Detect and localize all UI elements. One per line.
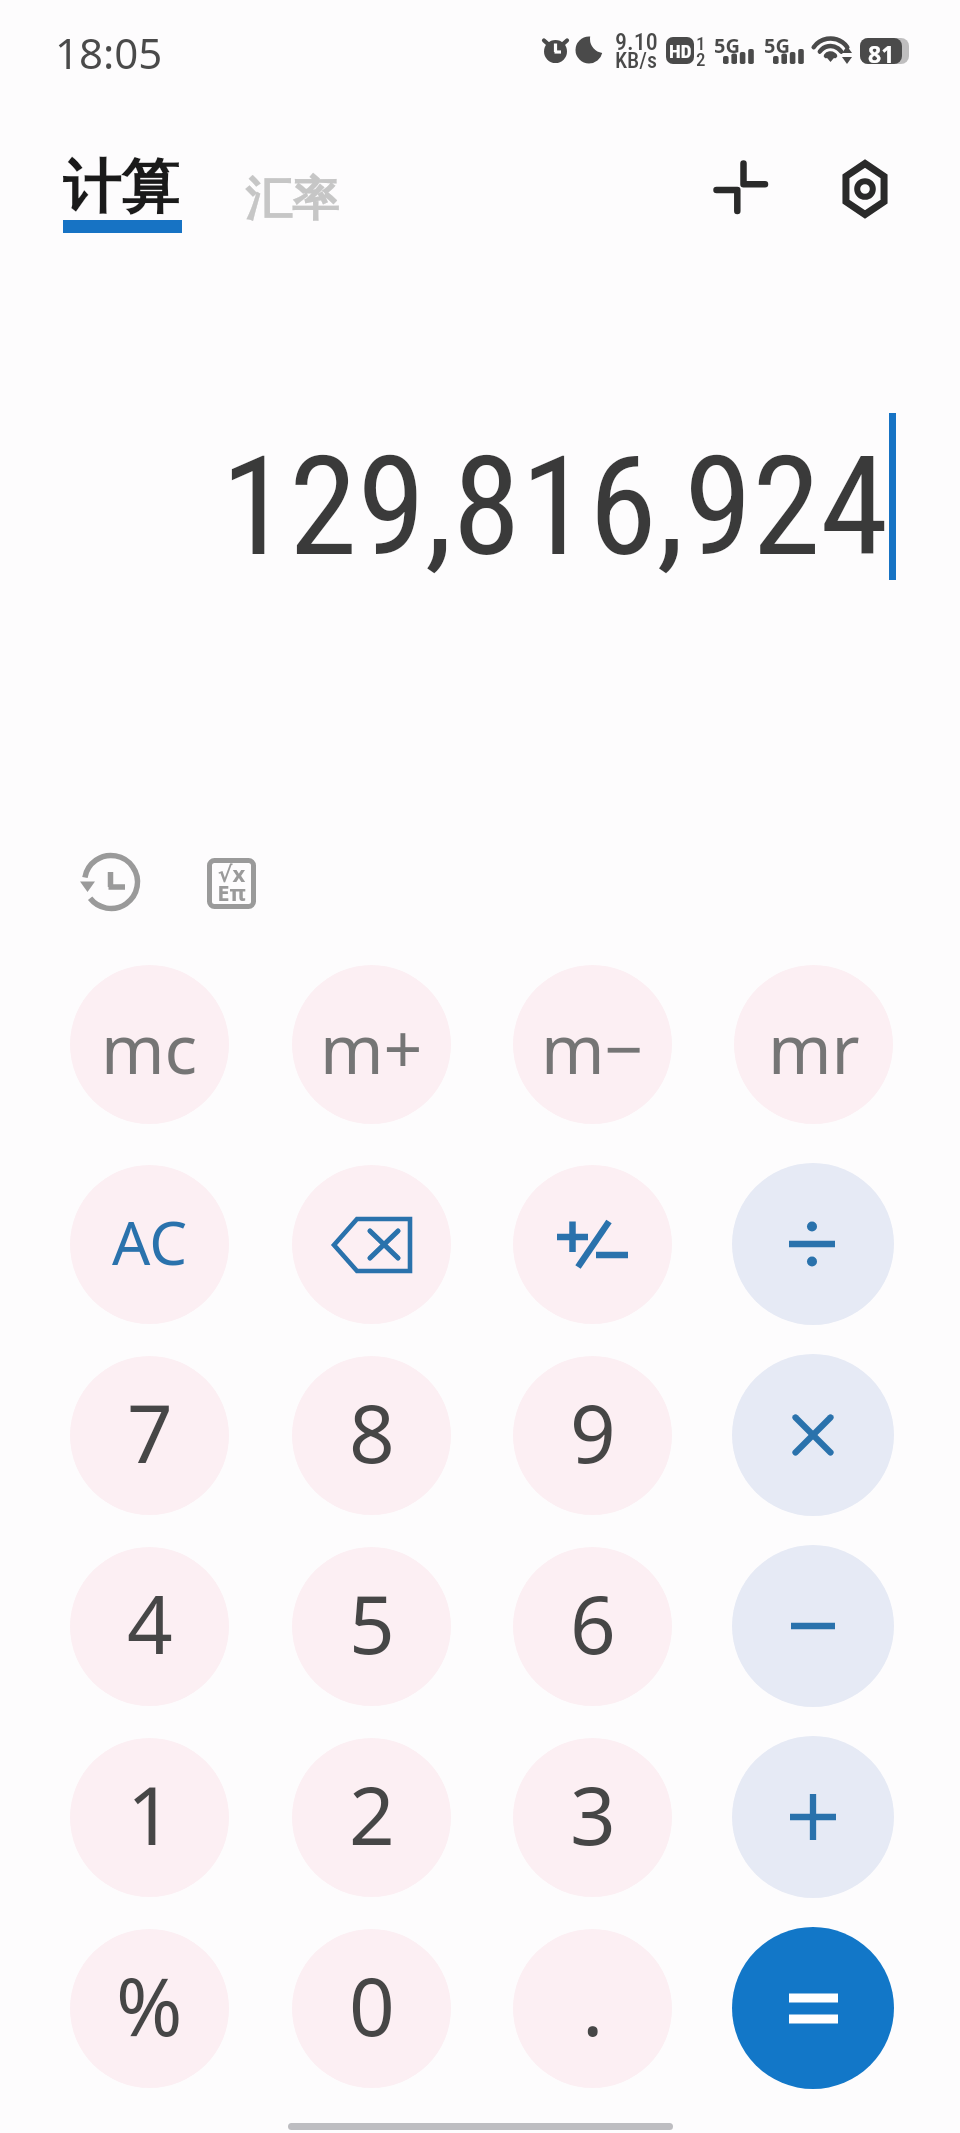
staticText: mc <box>101 1001 198 1094</box>
button[interactable]: 8 <box>292 1356 451 1515</box>
staticText: % <box>116 1950 183 2059</box>
button[interactable]: 汇率 <box>245 170 339 229</box>
staticText: 129,816,924 <box>221 426 889 588</box>
button[interactable]: 5 <box>292 1547 451 1706</box>
button[interactable]: Minus <box>732 1545 894 1707</box>
button[interactable]: Settings <box>810 134 920 244</box>
button[interactable]: Plus <box>732 1736 894 1898</box>
staticText: 5G <box>714 32 740 59</box>
button[interactable]: 0 <box>292 1929 451 2088</box>
staticText: . <box>582 1950 604 2059</box>
staticText: 2 <box>349 1759 395 1868</box>
button[interactable]: m+ <box>292 965 451 1124</box>
button[interactable]: History <box>63 834 159 930</box>
staticText: 0 <box>349 1950 395 2059</box>
staticText: 9.10 <box>615 28 658 56</box>
button[interactable]: Scientific mode <box>183 834 279 930</box>
button[interactable]: Equals <box>732 1927 894 2089</box>
button[interactable]: mc <box>70 965 229 1124</box>
button[interactable]: Unit converter <box>686 133 796 243</box>
button[interactable]: 4 <box>70 1547 229 1706</box>
staticText: AC <box>112 1201 188 1283</box>
staticText: m− <box>541 1001 644 1094</box>
staticText: 1 <box>696 32 706 54</box>
button[interactable]: 计算 <box>63 151 182 237</box>
staticText: 5 <box>349 1568 395 1677</box>
staticText: 8 <box>349 1377 395 1486</box>
button[interactable]: 6 <box>513 1547 672 1706</box>
staticText: 81 <box>868 38 895 64</box>
staticText: m+ <box>320 1001 423 1094</box>
button[interactable]: 1 <box>70 1738 229 1897</box>
staticText: 计算 <box>63 151 179 224</box>
button[interactable]: % <box>70 1929 229 2088</box>
button[interactable]: mr <box>734 965 893 1124</box>
staticText: 18:05 <box>55 24 163 81</box>
staticText: KB/s <box>615 48 657 74</box>
staticText: mr <box>768 1001 860 1094</box>
staticText: 9 <box>570 1377 616 1486</box>
button[interactable]: Multiply <box>732 1354 894 1516</box>
staticText: 汇率 <box>245 170 339 229</box>
button[interactable]: Backspace <box>292 1165 451 1324</box>
staticText: 6 <box>570 1568 616 1677</box>
button[interactable]: 3 <box>513 1738 672 1897</box>
button[interactable]: . <box>513 1929 672 2088</box>
staticText: 5G <box>764 32 790 59</box>
button[interactable]: Plus minus <box>513 1165 672 1324</box>
staticText: HD <box>669 40 692 62</box>
staticText: √x Eπ <box>217 858 246 907</box>
staticText: 2 <box>696 48 706 70</box>
staticText: 1 <box>127 1759 173 1868</box>
button[interactable]: 7 <box>70 1356 229 1515</box>
button[interactable]: Divide <box>732 1163 894 1325</box>
button[interactable]: AC <box>70 1165 229 1324</box>
staticText: 7 <box>127 1377 173 1486</box>
button[interactable]: 9 <box>513 1356 672 1515</box>
button[interactable]: 2 <box>292 1738 451 1897</box>
staticText: 4 <box>127 1568 173 1677</box>
staticText: 3 <box>570 1759 616 1868</box>
button[interactable]: m− <box>513 965 672 1124</box>
